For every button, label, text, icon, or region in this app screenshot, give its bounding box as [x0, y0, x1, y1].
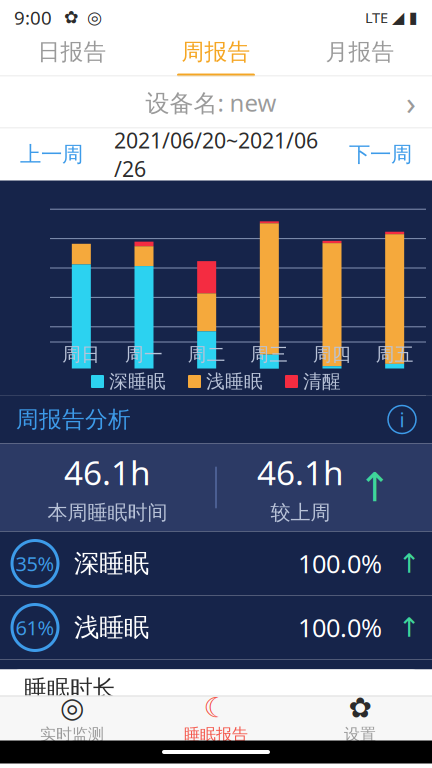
- staticText: 本周睡眠时间: [47, 500, 167, 525]
- button[interactable]: 35%: [0, 531, 432, 595]
- button[interactable]: 上一周: [0, 128, 103, 180]
- button[interactable]: 说明: [388, 405, 416, 433]
- staticText: 清醒: [303, 370, 341, 393]
- staticText: 设备名: new: [145, 87, 276, 118]
- staticText: 上一周: [20, 141, 83, 168]
- staticText: ◢: [392, 8, 404, 27]
- staticText: ›: [406, 81, 416, 124]
- staticText: LTE: [365, 8, 388, 27]
- button[interactable]: 下一周: [329, 128, 432, 180]
- button[interactable]: 周报告: [144, 30, 288, 76]
- staticText: ☾: [203, 692, 228, 724]
- button[interactable]: 61%: [0, 595, 432, 659]
- button[interactable]: ◎: [0, 695, 144, 740]
- staticText: 深睡眠: [109, 370, 166, 393]
- button[interactable]: 日报告: [0, 30, 144, 76]
- staticText: 日报告: [37, 38, 106, 66]
- staticText: ↑: [398, 548, 420, 579]
- staticText: 周四: [313, 343, 351, 366]
- staticText: 61%: [15, 614, 54, 641]
- staticText: ◎: [87, 8, 102, 27]
- staticText: 月报告: [325, 38, 394, 66]
- button[interactable]: 设备名: new: [0, 76, 432, 128]
- staticText: 46.1h: [64, 450, 151, 494]
- staticText: 设置: [344, 725, 376, 744]
- button[interactable]: ☾: [144, 695, 288, 740]
- staticText: 9:00: [14, 5, 52, 30]
- staticText: 周二: [188, 343, 226, 366]
- staticText: 周报告分析: [16, 406, 131, 433]
- staticText: ▮: [409, 8, 418, 27]
- staticText: 下一周: [349, 141, 412, 168]
- button[interactable]: 月报告: [288, 30, 432, 76]
- staticText: ✿: [348, 692, 371, 724]
- staticText: 周三: [250, 343, 288, 366]
- staticText: 睡眠报告: [184, 725, 248, 744]
- staticText: 深睡眠: [74, 548, 149, 579]
- staticText: 46.1h: [257, 450, 344, 494]
- staticText: 100.0%: [298, 547, 382, 580]
- staticText: ↑: [398, 612, 420, 643]
- staticText: 较上周: [270, 500, 330, 525]
- staticText: 周五: [376, 343, 414, 366]
- staticText: ↑: [358, 465, 392, 510]
- staticText: 浅睡眠: [74, 612, 149, 643]
- staticText: 浅睡眠: [206, 370, 263, 393]
- staticText: 100.0%: [298, 611, 382, 644]
- staticText: i: [399, 406, 404, 433]
- staticText: 周报告: [181, 38, 250, 66]
- staticText: 睡眠时长: [24, 675, 116, 702]
- staticText: ✿: [64, 8, 79, 27]
- staticText: 35%: [15, 550, 54, 577]
- button[interactable]: ✿: [288, 695, 432, 740]
- staticText: ◎: [60, 692, 84, 724]
- staticText: 周一: [125, 343, 163, 366]
- staticText: 2021/06/20~2021/06/26: [114, 126, 318, 183]
- staticText: 实时监测: [40, 725, 104, 744]
- staticText: 周日: [62, 343, 100, 366]
